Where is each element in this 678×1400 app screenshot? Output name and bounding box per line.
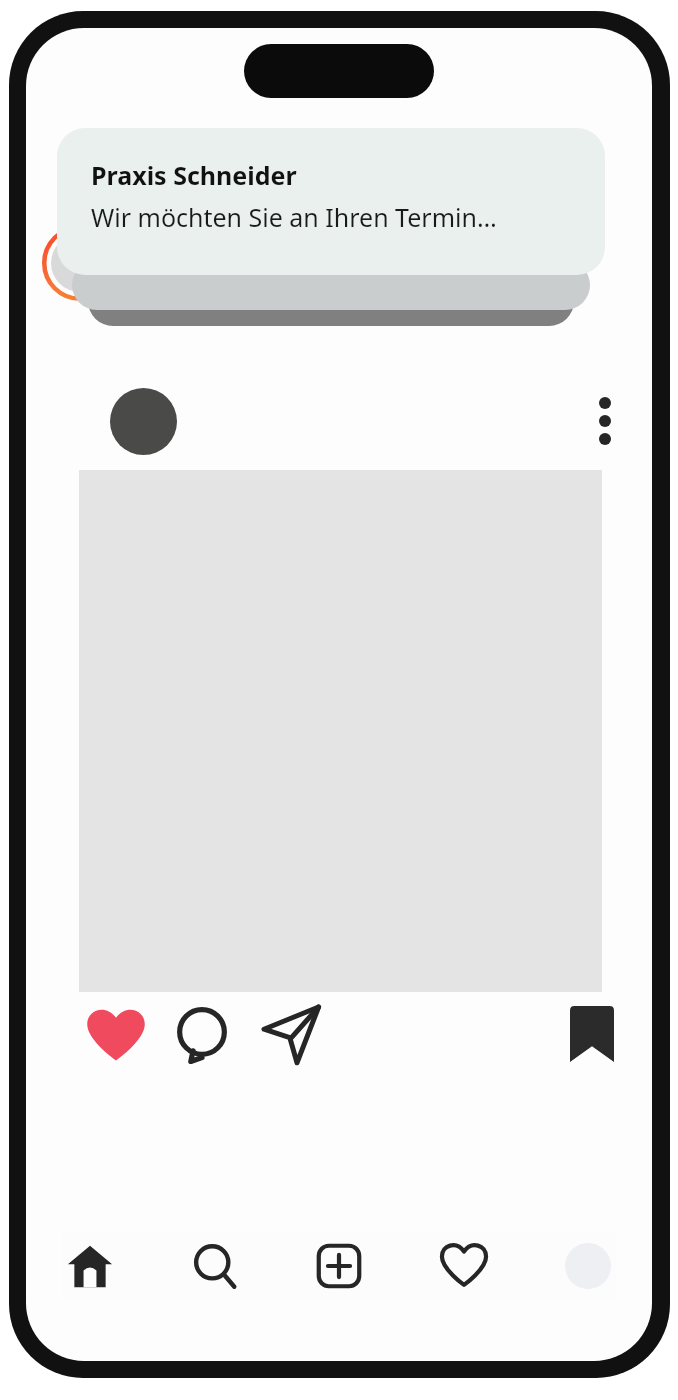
button[interactable]: Search <box>187 1236 243 1296</box>
button[interactable]: Share <box>248 996 334 1072</box>
button[interactable]: Save <box>554 996 630 1072</box>
button[interactable]: Comment <box>162 996 242 1072</box>
button[interactable]: Profile <box>560 1236 616 1296</box>
staticText: Wir möchten Sie an Ihren Termin… <box>91 200 497 234</box>
button[interactable]: Activity <box>436 1236 492 1296</box>
button[interactable]: Home <box>62 1236 118 1296</box>
staticText: Praxis Schneider <box>91 158 297 192</box>
button[interactable]: Praxis Schneider <box>57 128 605 275</box>
button[interactable]: Create <box>311 1236 367 1296</box>
button[interactable]: Story <box>42 225 118 301</box>
button[interactable]: Like <box>76 996 156 1072</box>
button[interactable]: Profile picture <box>110 388 177 455</box>
button[interactable]: More options <box>578 386 632 456</box>
